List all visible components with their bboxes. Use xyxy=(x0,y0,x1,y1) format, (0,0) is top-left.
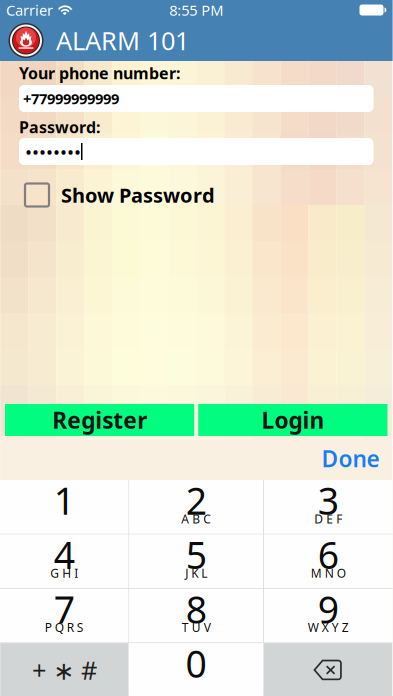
staticText: P Q R S xyxy=(45,619,84,635)
staticText: D E F xyxy=(314,511,342,527)
staticText: M N O xyxy=(311,565,346,581)
staticText: Your phone number: xyxy=(19,62,180,84)
staticText: 8 xyxy=(186,584,207,634)
button[interactable]: Delete xyxy=(263,643,392,696)
staticText: 9 xyxy=(318,584,339,634)
staticText: 6 xyxy=(318,530,339,579)
staticText: 3 xyxy=(318,475,339,525)
button[interactable]: 1 xyxy=(0,480,128,534)
staticText: ALARM 101 xyxy=(56,24,189,57)
staticText: J K L xyxy=(185,565,207,581)
staticText: Password: xyxy=(19,116,100,138)
button[interactable]: Symbols xyxy=(0,643,129,696)
button[interactable]: Done xyxy=(308,436,392,481)
staticText: 1 xyxy=(54,475,75,525)
button[interactable]: 5 xyxy=(129,535,263,588)
button[interactable]: 8 xyxy=(129,589,263,642)
staticText: 5 xyxy=(186,530,207,579)
staticText: W X Y Z xyxy=(308,619,349,635)
staticText: 2 xyxy=(186,475,207,525)
staticText: + ∗ # xyxy=(32,653,97,687)
staticText: Done xyxy=(321,443,379,473)
button[interactable]: 2 xyxy=(129,480,263,534)
button[interactable]: 6 xyxy=(264,535,392,588)
button[interactable]: Register xyxy=(5,404,194,436)
staticText: Login xyxy=(261,405,324,435)
staticText: 4 xyxy=(54,530,75,579)
staticText: 8:55 PM xyxy=(169,0,223,20)
button[interactable]: 3 xyxy=(264,480,392,534)
staticText: •••••••• xyxy=(25,139,81,164)
staticText: 7 xyxy=(54,584,75,634)
staticText: Register xyxy=(52,405,147,435)
button[interactable]: 9 xyxy=(264,589,392,642)
staticText: Show Password xyxy=(61,182,215,208)
staticText: 0 xyxy=(186,638,207,688)
staticText: Carrier xyxy=(6,0,53,20)
button[interactable]: Show Password xyxy=(0,181,392,209)
button[interactable]: Login xyxy=(198,404,388,436)
staticText: A B C xyxy=(181,511,211,527)
button[interactable]: 7 xyxy=(0,589,128,642)
staticText: G H I xyxy=(50,565,78,581)
button[interactable]: 0 xyxy=(129,643,263,696)
button[interactable]: 4 xyxy=(0,535,128,588)
staticText: +77999999999 xyxy=(23,89,119,108)
staticText: T U V xyxy=(182,619,211,635)
